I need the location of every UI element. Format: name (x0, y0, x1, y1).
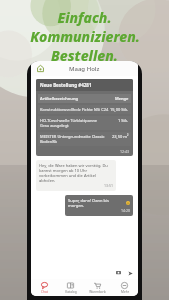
button[interactable]: Chat (31, 279, 57, 296)
button[interactable]: Neue Bestellung #4281 (36, 79, 133, 156)
staticText: HO-Türschwelle Türblattpanne Grau ausgel… (40, 118, 118, 128)
staticText: 14:20 (121, 208, 130, 213)
staticText: MEISTER Untergrundmatte Classic Boden8b (40, 134, 112, 144)
staticText: Super, dann! Dann bis morgen. (68, 198, 124, 208)
staticText: Einfach. (57, 8, 112, 27)
staticText: Kommunizieren. (30, 27, 140, 46)
button[interactable]: Super, dann! Dann bis morgen. (65, 195, 133, 216)
staticText: Katalog (65, 290, 77, 294)
button[interactable]: Maag Holz Logo (35, 63, 46, 74)
staticText: Warenkorb (89, 290, 106, 294)
button[interactable]: Warenkorb (84, 279, 111, 296)
staticText: Chat (41, 290, 48, 294)
staticText: Neue Bestellung #4281 (40, 82, 92, 88)
staticText: 13:51 (104, 183, 113, 188)
button[interactable]: Senden (126, 269, 134, 277)
button[interactable]: Katalog (57, 279, 84, 296)
button[interactable]: Hey, die Ware haben wir vorrätig. Du kan… (36, 160, 116, 191)
staticText: Artikelbezeichnung (40, 96, 115, 101)
staticText: Konstruktionsvollholz Fichte NSi C24 (40, 107, 110, 112)
staticText: Hey, die Ware haben wir vorrätig. Du kan… (39, 163, 113, 183)
other: Kamera (116, 270, 121, 275)
staticText: 15,00 Stk. (110, 107, 129, 112)
staticText: Bestellen. (51, 46, 118, 65)
staticText: 23,50 m² (112, 134, 129, 139)
staticText: Menge (115, 96, 129, 101)
staticText: 1 Stk. (118, 118, 129, 123)
staticText: Mehr (121, 290, 129, 294)
staticText: 12:43 (120, 149, 129, 154)
staticText: Maag Holz (69, 65, 100, 73)
button[interactable]: Mehr (111, 279, 138, 296)
button[interactable]: Kamera (35, 268, 124, 277)
